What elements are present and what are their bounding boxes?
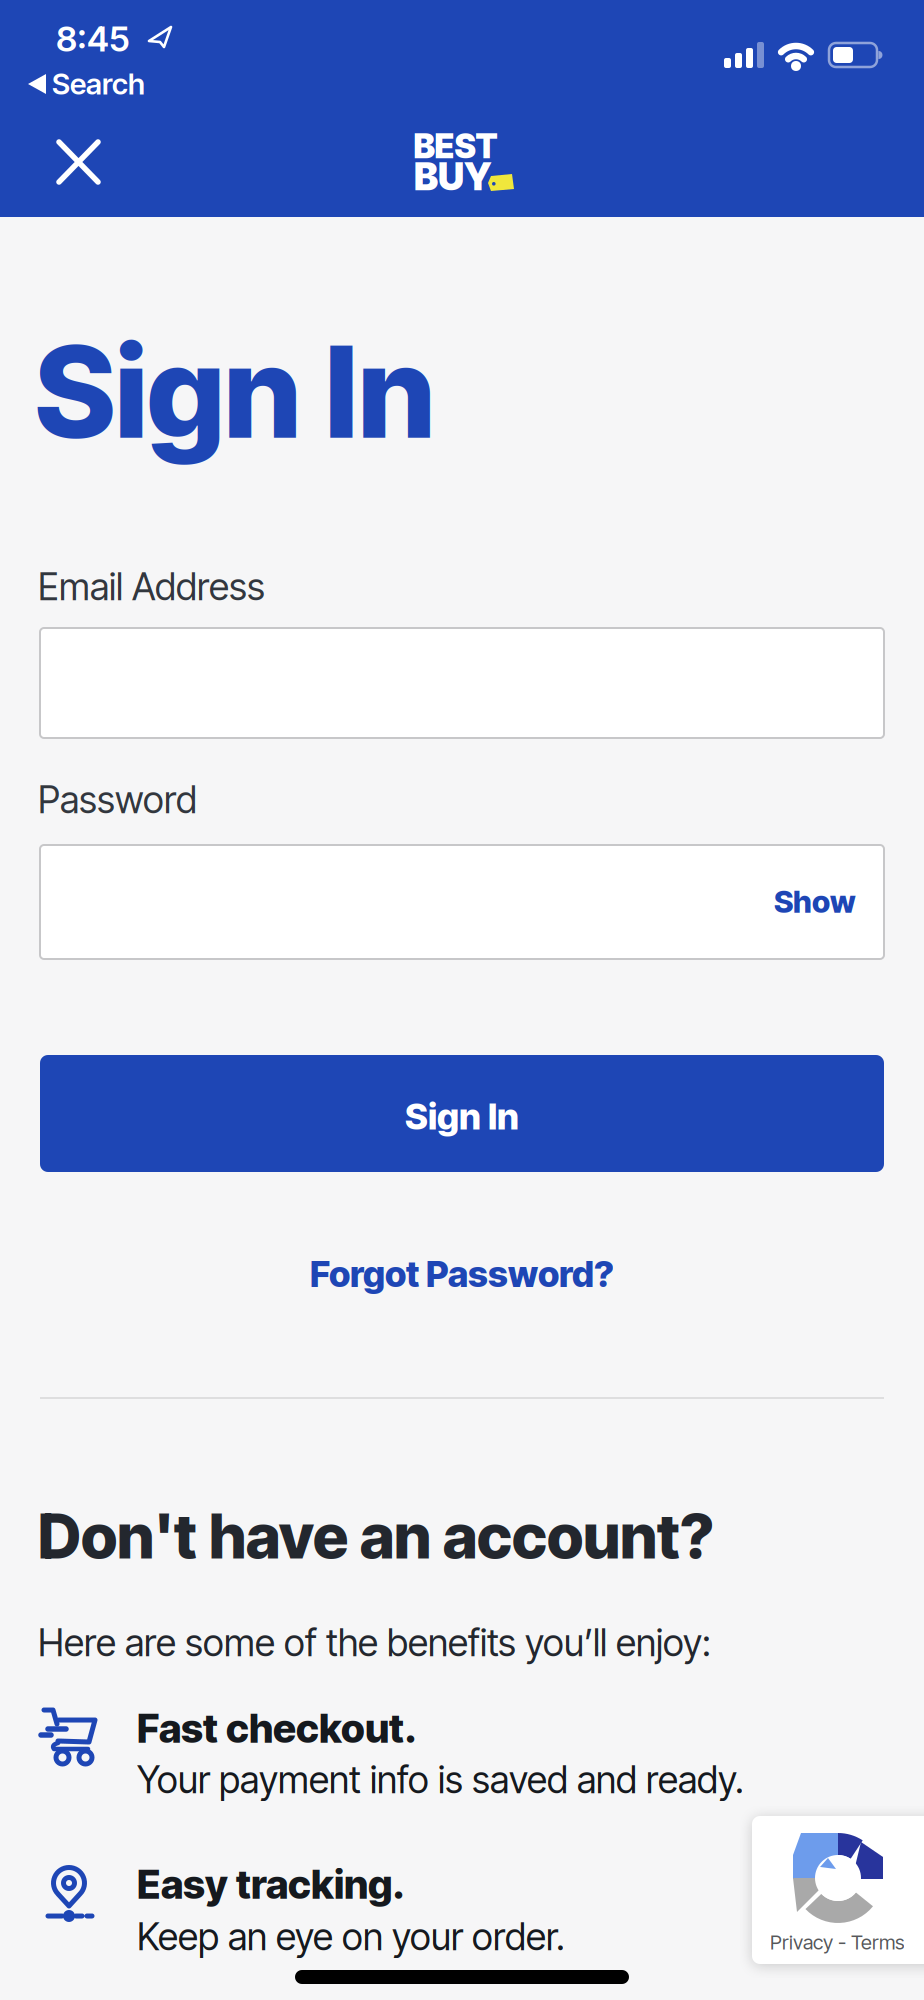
button[interactable]: Privacy - Terms — [770, 1930, 905, 1954]
staticText: Easy tracking. — [137, 1860, 405, 1908]
staticText: Password — [38, 777, 197, 822]
button[interactable] — [43, 126, 115, 198]
staticText: Here are some of the benefits you’ll enj… — [38, 1620, 711, 1665]
button[interactable] — [40, 628, 884, 738]
staticText: Sign In — [405, 1095, 519, 1138]
button[interactable]: Forgot Password? — [310, 1252, 614, 1296]
staticText: BUY — [414, 154, 492, 199]
staticText: Forgot Password? — [310, 1252, 614, 1296]
button[interactable]: Search — [20, 64, 190, 104]
staticText: Your payment info is saved and ready. — [137, 1757, 744, 1802]
staticText: Show — [774, 883, 856, 920]
staticText: Privacy - Terms — [770, 1930, 905, 1954]
staticText: Email Address — [38, 564, 265, 609]
button[interactable]: Sign In — [40, 1055, 884, 1172]
staticText: Don't have an account? — [38, 1499, 714, 1573]
staticText: 8:45 — [56, 18, 130, 60]
staticText: Keep an eye on your order. — [137, 1914, 565, 1959]
staticText: BEST — [413, 126, 497, 166]
button[interactable] — [40, 845, 884, 959]
staticText: Fast checkout. — [137, 1704, 417, 1752]
staticText: Sign In — [35, 315, 435, 468]
staticText: Search — [52, 66, 145, 101]
button[interactable]: Show — [774, 883, 856, 920]
